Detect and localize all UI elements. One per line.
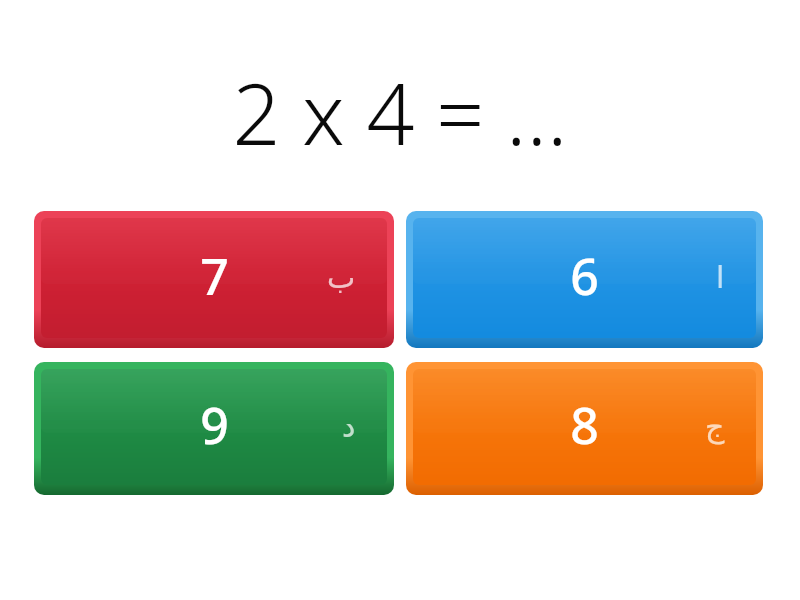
button[interactable]: 6 xyxy=(406,211,763,348)
staticText: 6 xyxy=(570,242,599,310)
button[interactable]: 7 xyxy=(34,211,394,348)
staticText: ب xyxy=(327,260,356,295)
staticText: 8 xyxy=(570,391,599,459)
staticText: 7 xyxy=(200,242,229,310)
staticText: ا xyxy=(716,260,725,295)
staticText: ج xyxy=(705,409,725,444)
staticText: 9 xyxy=(200,391,229,459)
staticText: 2 x 4 = ... xyxy=(232,55,568,169)
button[interactable]: 9 xyxy=(34,362,394,495)
button[interactable]: 8 xyxy=(406,362,763,495)
staticText: د xyxy=(342,409,356,444)
